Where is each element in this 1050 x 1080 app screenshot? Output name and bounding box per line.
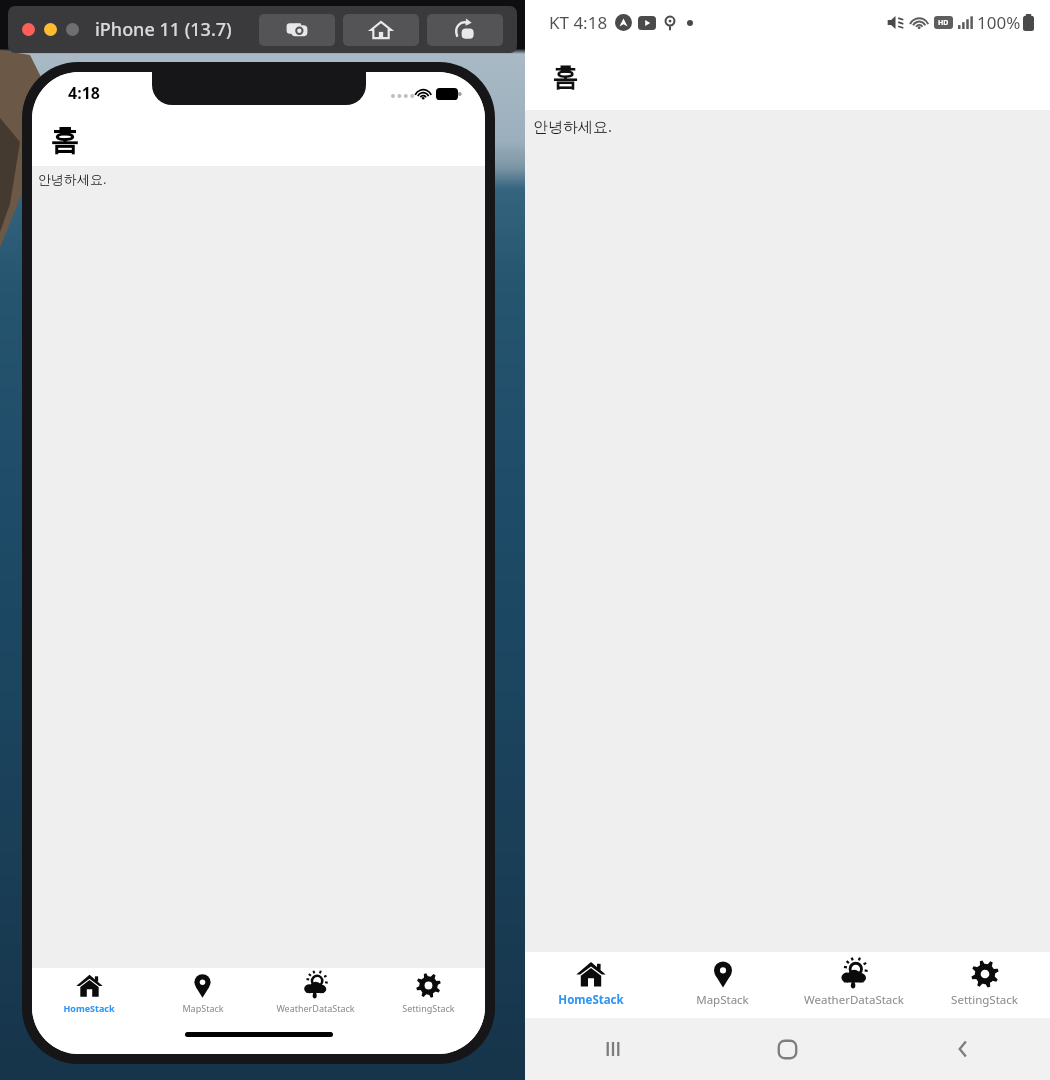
button[interactable]: SettingStack	[372, 968, 485, 1026]
staticText: HD	[938, 18, 949, 28]
button[interactable]: Recents	[525, 1018, 700, 1080]
button[interactable]: Back	[875, 1018, 1050, 1080]
button[interactable]: MapStack	[146, 968, 259, 1026]
button[interactable]: Screenshot	[259, 14, 335, 46]
staticText: HomeStack	[63, 1002, 115, 1014]
staticText: WeatherDataStack	[804, 992, 904, 1008]
staticText: 4:18	[68, 82, 100, 104]
staticText: 안녕하세요.	[38, 170, 107, 188]
button[interactable]: WeatherDataStack	[259, 968, 372, 1026]
button[interactable]: HomeStack	[525, 952, 657, 1018]
staticText: SettingStack	[951, 992, 1018, 1008]
staticText: 안녕하세요.	[533, 116, 613, 136]
button[interactable]: HomeStack	[32, 968, 146, 1026]
staticText: SettingStack	[402, 1002, 455, 1014]
staticText: KT 4:18	[549, 11, 608, 34]
button[interactable]: Minimize	[44, 23, 57, 36]
staticText: MapStack	[182, 1002, 224, 1014]
staticText: 홈	[50, 122, 79, 159]
staticText: 100%	[977, 11, 1021, 34]
button[interactable]: Rotate	[427, 14, 503, 46]
staticText: MapStack	[696, 992, 749, 1008]
button[interactable]: Home	[700, 1018, 875, 1080]
button[interactable]: SettingStack	[919, 952, 1050, 1018]
staticText: iPhone 11 (13.7)	[95, 17, 232, 42]
button[interactable]: Home	[343, 14, 419, 46]
button[interactable]: Close	[22, 23, 35, 36]
staticText: WeatherDataStack	[276, 1002, 355, 1014]
staticText: HomeStack	[558, 992, 624, 1008]
staticText: 홈	[552, 61, 578, 94]
button[interactable]: MapStack	[657, 952, 788, 1018]
button[interactable]: WeatherDataStack	[788, 952, 919, 1018]
